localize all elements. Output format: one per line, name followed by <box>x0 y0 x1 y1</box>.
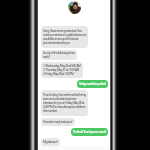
button[interactable]: Contact avatar <box>68 1 81 14</box>
button[interactable]: My pleasure! <box>41 138 60 146</box>
staticText: Greg, I have some great news. You meet o… <box>43 29 86 45</box>
staticText: 1. Wednesday, May 26 at 9:00 AM 2. Thurs… <box>43 64 81 76</box>
button[interactable]: Thanks Greg. I've confirmed the hiring t… <box>41 90 88 116</box>
button[interactable]: That's all. Thank you so much! <box>71 128 108 136</box>
staticText: How else may I assist you? <box>43 120 73 124</box>
staticText: Friday would be perfect! <box>79 82 106 86</box>
button[interactable]: 1. Wednesday, May 26 at 9:00 AM 2. Thurs… <box>41 62 83 78</box>
button[interactable]: How else may I assist you? <box>41 118 75 126</box>
staticText: My pleasure! <box>43 140 58 144</box>
staticText: So any of the following times work? <box>43 51 75 59</box>
staticText: Thanks Greg. I've confirmed the hiring t… <box>43 93 86 113</box>
staticText: That's all. Thank you so much! <box>73 130 106 134</box>
button[interactable]: Greg, I have some great news. You meet o… <box>41 26 88 48</box>
button[interactable]: Friday would be perfect! <box>77 80 108 88</box>
button[interactable]: So any of the following times work? <box>41 50 77 60</box>
